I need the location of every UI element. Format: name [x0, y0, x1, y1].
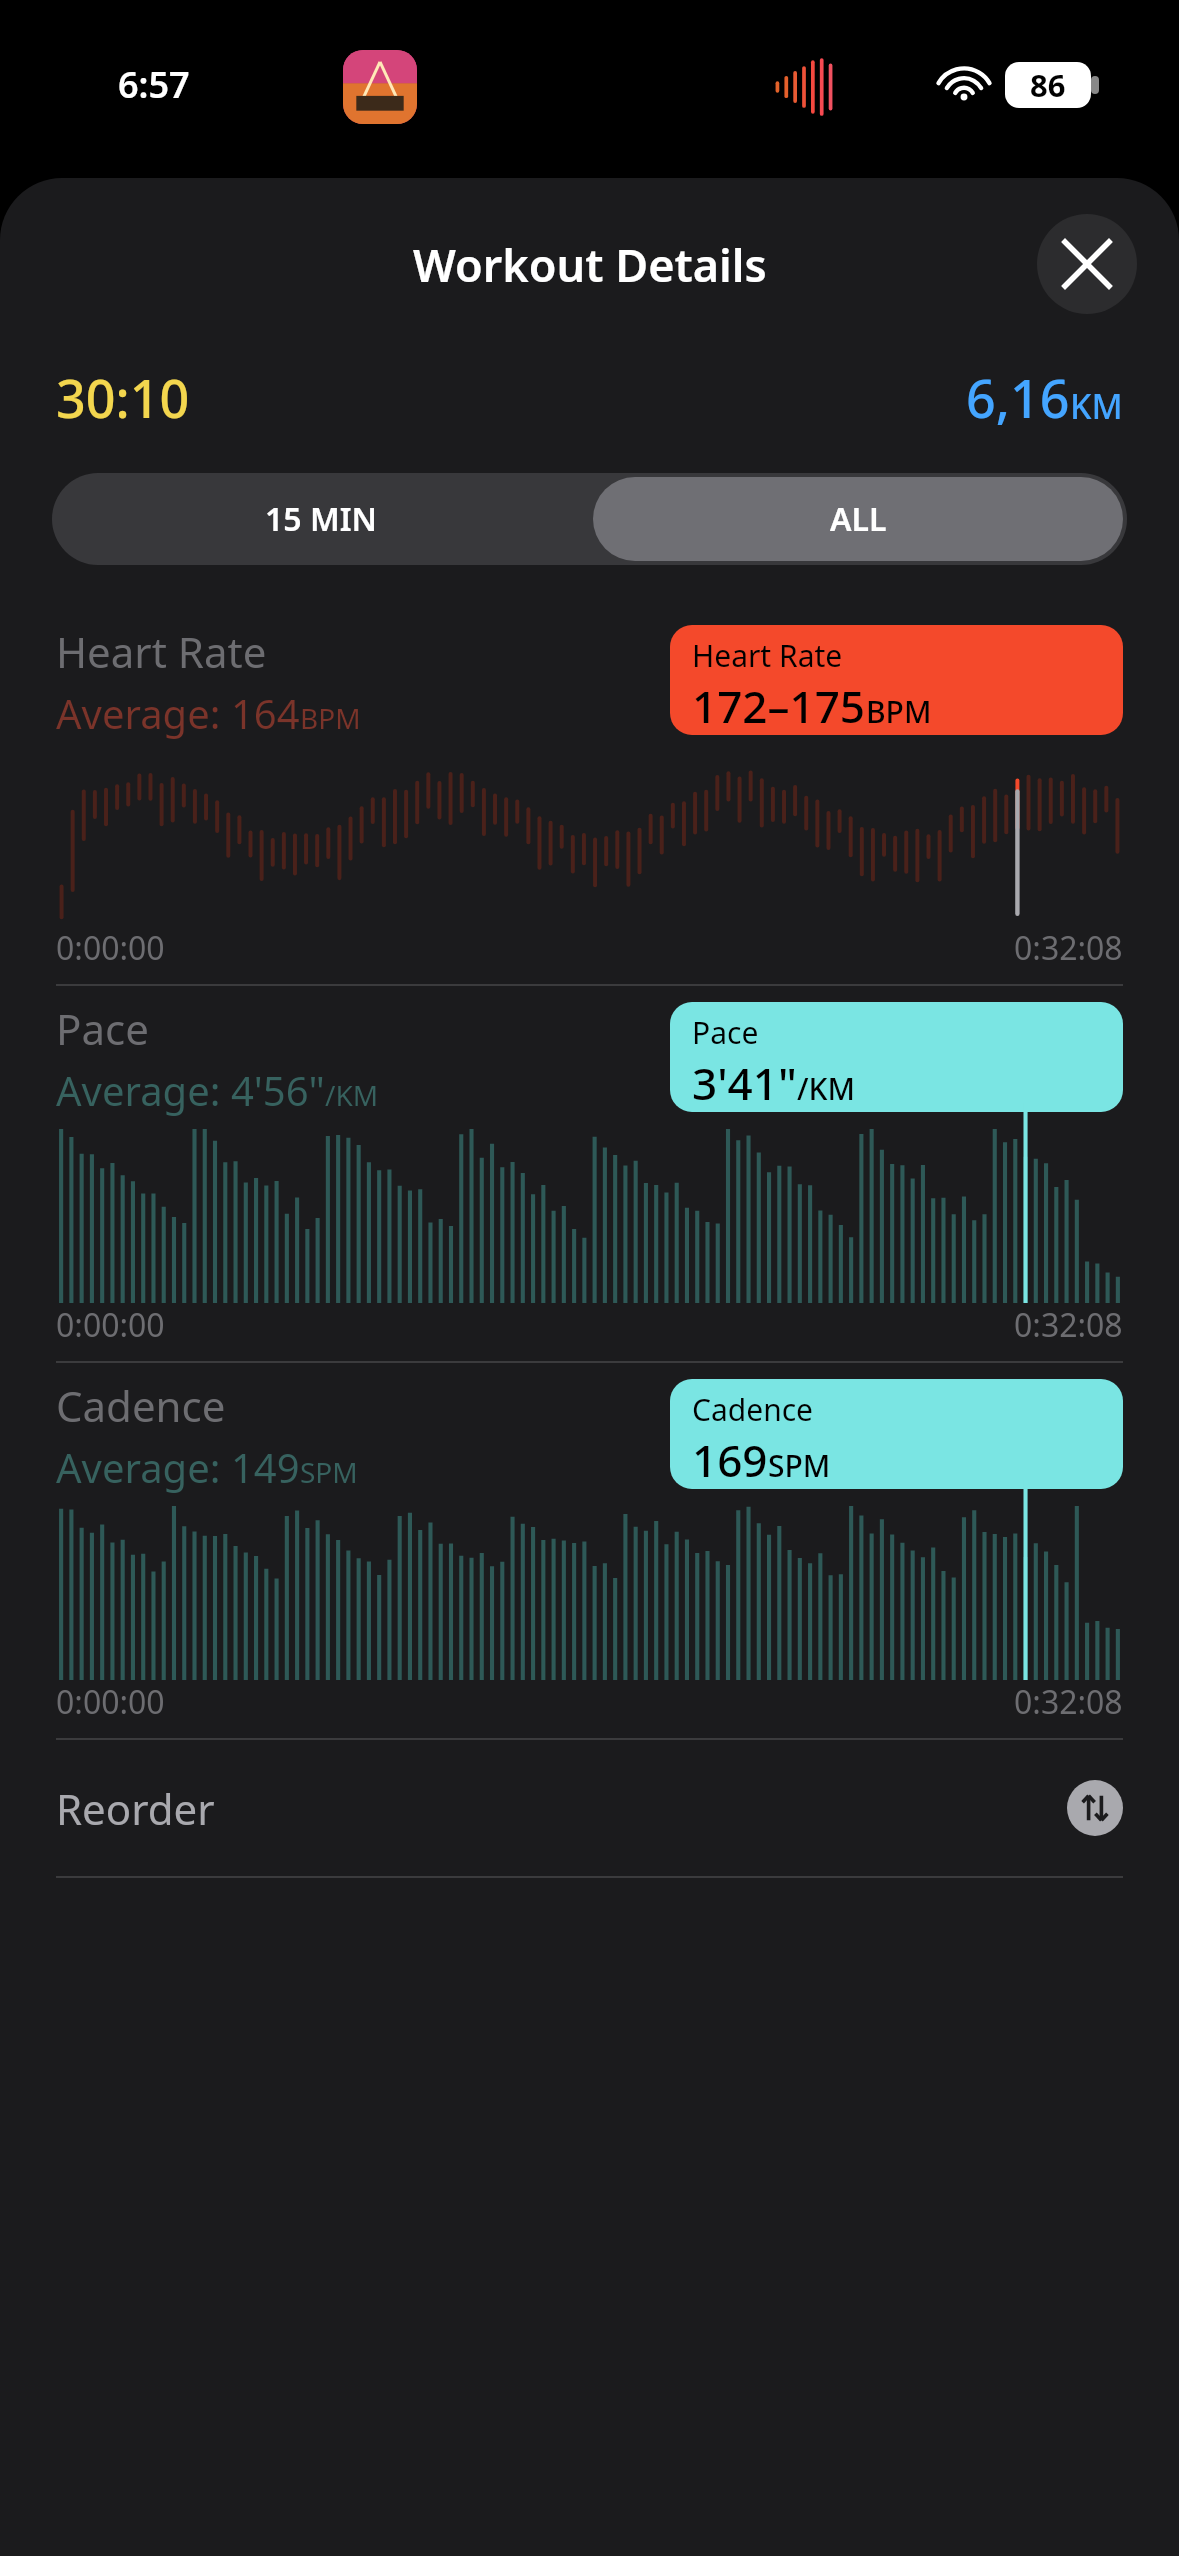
- staticText: Reorder: [56, 1780, 215, 1837]
- staticText: Average: 149: [56, 1440, 300, 1494]
- staticText: 6:57: [118, 60, 190, 109]
- staticText: Cadence: [56, 1377, 226, 1434]
- staticText: 86: [1030, 64, 1066, 106]
- staticText: BPM: [300, 699, 361, 737]
- staticText: Pace: [692, 1012, 759, 1053]
- button[interactable]: Reorder: [0, 1740, 1179, 1876]
- staticText: 0:00:00: [56, 1303, 165, 1347]
- staticText: 0:00:00: [56, 1680, 165, 1724]
- staticText: 172–175: [692, 676, 866, 735]
- button[interactable]: Pace: [692, 1012, 1123, 1112]
- staticText: 0:32:08: [1014, 1303, 1123, 1347]
- staticText: 0:32:08: [1014, 926, 1123, 970]
- staticText: 0:00:00: [56, 926, 165, 970]
- staticText: 6,16: [966, 362, 1070, 433]
- staticText: Average: 164: [56, 686, 300, 740]
- staticText: Heart Rate: [692, 635, 843, 676]
- staticText: ALL: [830, 497, 887, 541]
- staticText: Workout Details: [413, 234, 767, 295]
- staticText: Cadence: [692, 1389, 814, 1430]
- staticText: 169: [692, 1430, 768, 1489]
- staticText: 0:32:08: [1014, 1680, 1123, 1724]
- button[interactable]: Close: [1037, 214, 1137, 314]
- staticText: Pace: [56, 1000, 149, 1057]
- button[interactable]: Cadence: [692, 1389, 1123, 1489]
- staticText: BPM: [866, 691, 932, 732]
- other: Reorder: [1067, 1780, 1123, 1836]
- button[interactable]: 15 MIN: [52, 473, 589, 565]
- staticText: 30:10: [56, 362, 190, 433]
- staticText: 15 MIN: [265, 497, 377, 541]
- staticText: Average: 4'56": [56, 1063, 325, 1117]
- staticText: /KM: [325, 1076, 379, 1114]
- staticText: Heart Rate: [56, 623, 267, 680]
- staticText: 3'41": [692, 1053, 797, 1112]
- button[interactable]: ALL: [593, 477, 1123, 561]
- staticText: /KM: [797, 1068, 856, 1109]
- staticText: KM: [1070, 383, 1123, 429]
- staticText: SPM: [768, 1445, 831, 1486]
- button[interactable]: Heart Rate: [692, 635, 1123, 735]
- staticText: SPM: [300, 1453, 358, 1491]
